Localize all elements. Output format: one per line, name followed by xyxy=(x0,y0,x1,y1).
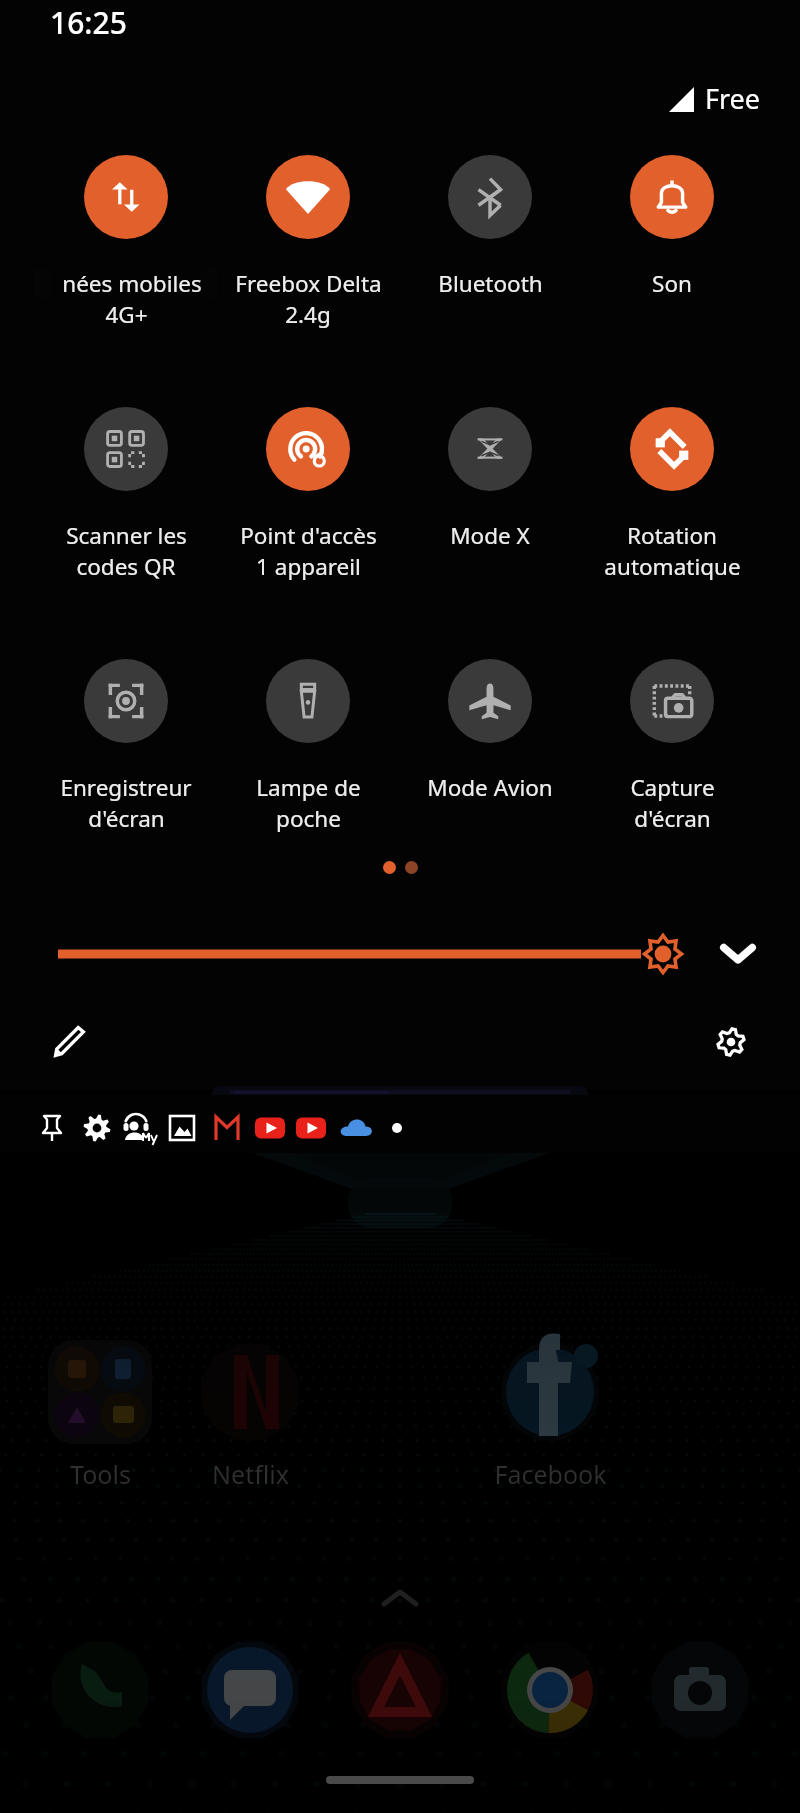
button[interactable]: Rotation xyxy=(581,407,763,582)
button[interactable]: Edit tiles xyxy=(43,1015,96,1068)
staticText: Point d'accès xyxy=(240,520,377,551)
button[interactable]: Son xyxy=(581,155,763,299)
staticText: codes QR xyxy=(76,551,176,582)
staticText: Lampe de xyxy=(256,772,361,803)
staticText: Freebox Delta xyxy=(235,268,382,299)
staticText: Rotation xyxy=(627,520,717,551)
button[interactable]: Point d'accès xyxy=(217,407,399,582)
staticText: Mode X xyxy=(450,520,530,551)
staticText: d'écran xyxy=(88,803,165,834)
staticText: d'écran xyxy=(634,803,711,834)
staticText: Mode Avion xyxy=(427,772,553,803)
button[interactable]: Scanner les xyxy=(35,407,217,582)
staticText: Enregistreur xyxy=(60,772,192,803)
button[interactable]: Mode Avion xyxy=(399,659,581,803)
button[interactable]: Expand quick settings xyxy=(714,929,762,977)
staticText: Facebook xyxy=(494,1457,607,1491)
staticText: nées mobiles xyxy=(62,268,202,299)
staticText: poche xyxy=(276,803,341,834)
staticText: 1 appareil xyxy=(256,551,361,582)
staticText: automatique xyxy=(604,551,741,582)
button[interactable]: Bluetooth xyxy=(399,155,581,299)
staticText: Netflix xyxy=(212,1457,289,1491)
button[interactable]: Freebox Delta xyxy=(217,155,399,330)
button[interactable]: nées mobiles xyxy=(35,155,217,330)
button[interactable]: Settings xyxy=(704,1015,757,1068)
staticText: Capture xyxy=(630,772,715,803)
staticText: Bluetooth xyxy=(438,268,543,299)
staticText: 2.4g xyxy=(285,299,331,330)
staticText: Son xyxy=(652,268,692,299)
staticText: 16:25 xyxy=(50,2,127,43)
staticText: Tools xyxy=(70,1457,131,1491)
staticText: 4G+ xyxy=(105,299,148,330)
button[interactable]: Enregistreur xyxy=(35,659,217,834)
staticText: Free xyxy=(705,80,761,117)
button[interactable]: Capture xyxy=(581,659,763,834)
staticText: Scanner les xyxy=(66,520,187,551)
button[interactable]: Mode X xyxy=(399,407,581,551)
button[interactable]: Lampe de xyxy=(217,659,399,834)
